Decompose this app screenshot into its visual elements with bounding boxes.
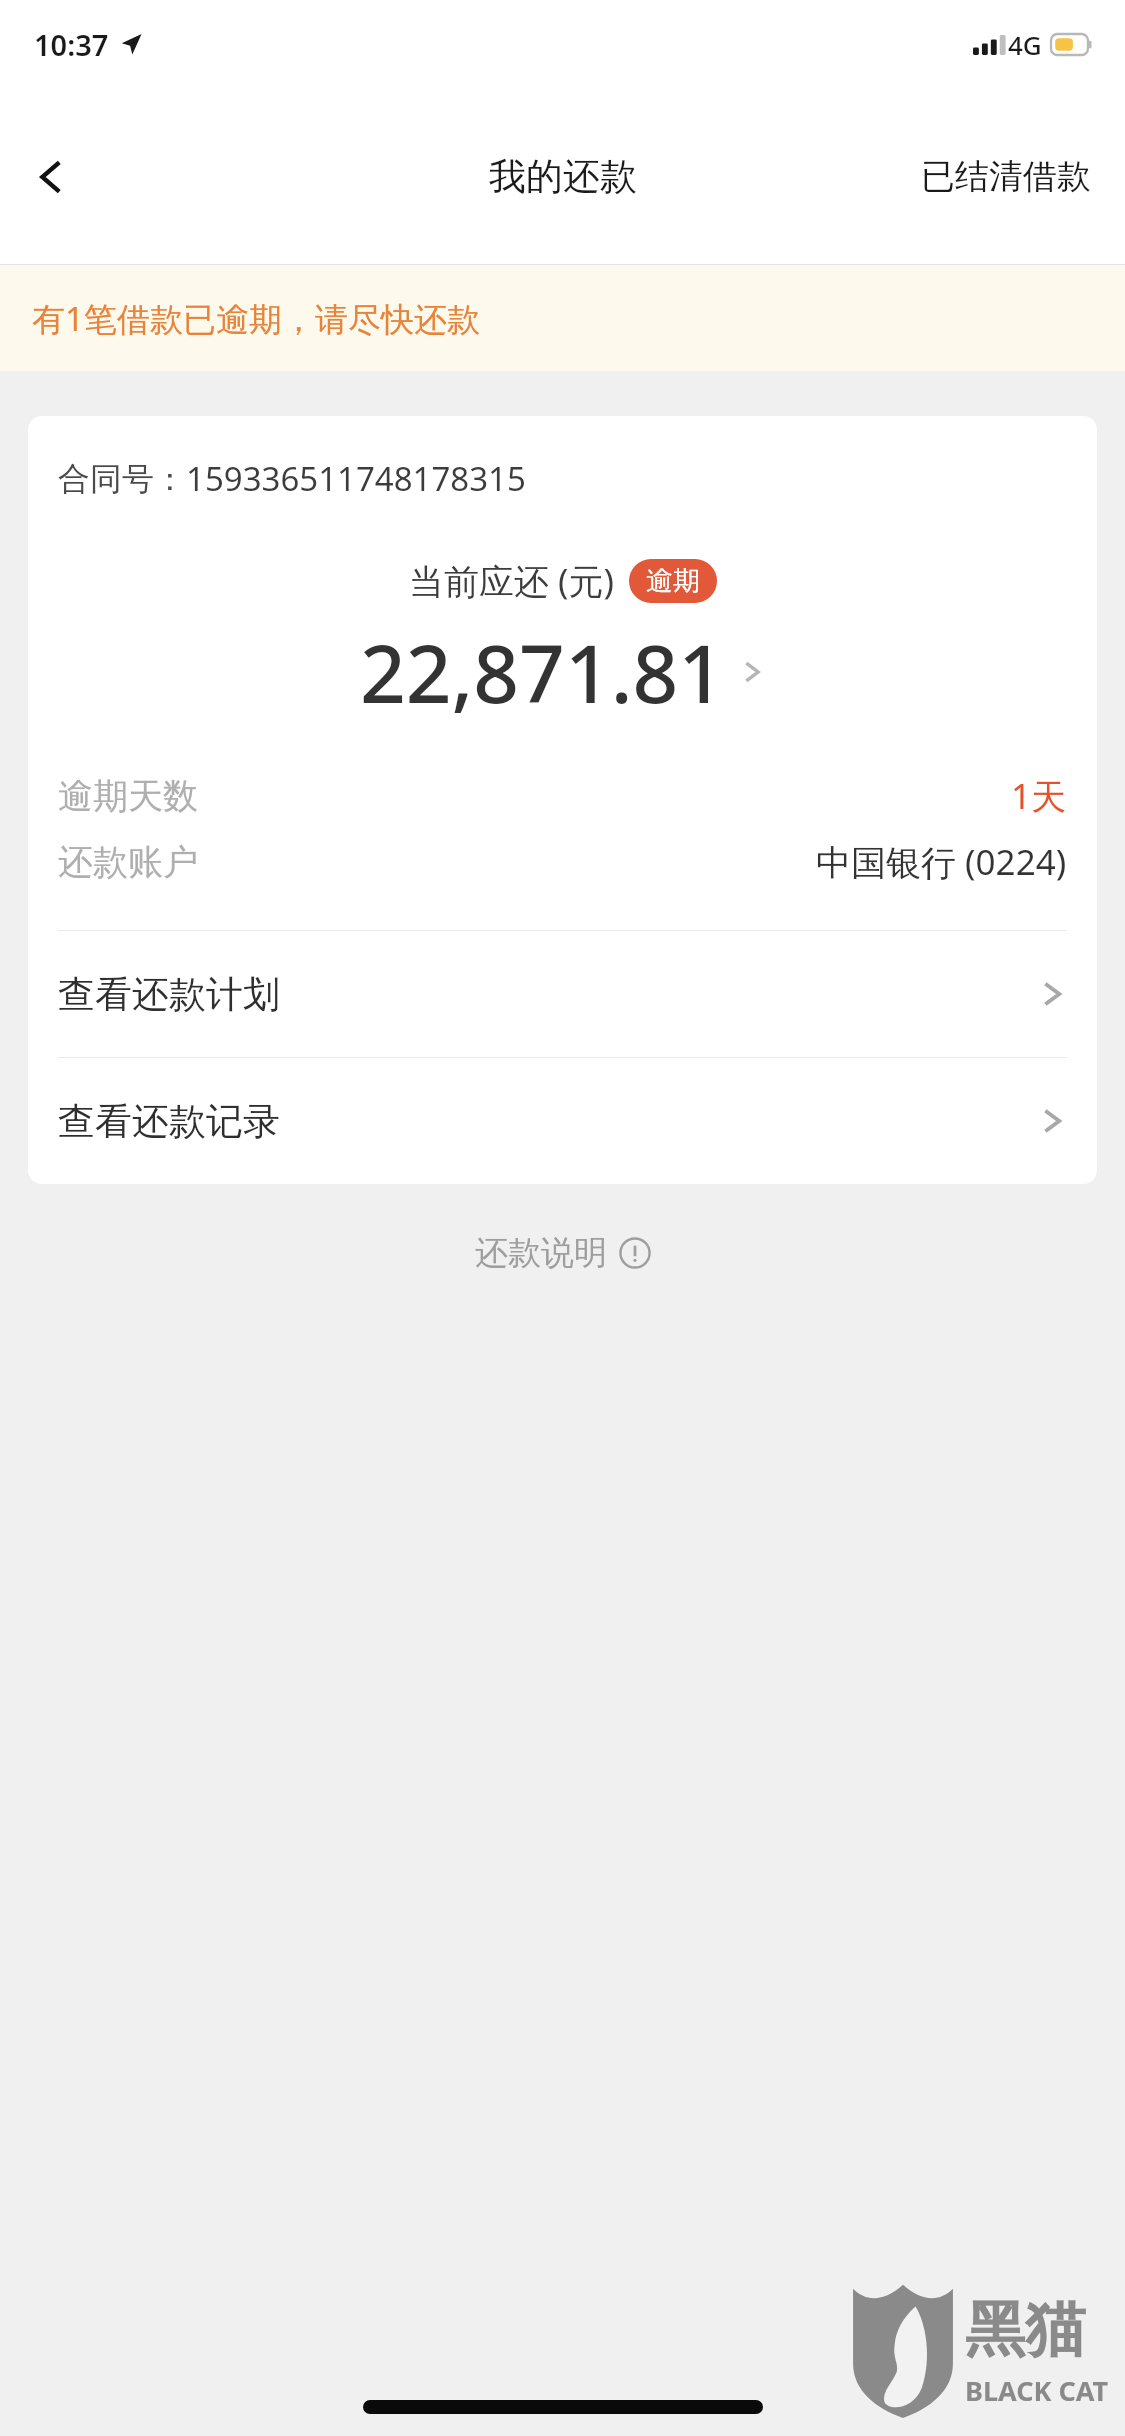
staticText: 已结清借款: [921, 155, 1091, 198]
staticText: 还款说明: [475, 1232, 607, 1274]
staticText: 查看还款计划: [58, 971, 280, 1018]
staticText: 22,871.81: [360, 617, 724, 726]
staticText: 查看还款记录: [58, 1098, 280, 1145]
staticText: 逾期: [646, 564, 700, 598]
staticText: 1天: [1011, 772, 1067, 820]
staticText: 有1笔借款已逾期，请尽快还款: [32, 296, 480, 341]
staticText: 黑猫: [965, 2292, 1085, 2368]
staticText: 逾期天数: [58, 774, 198, 818]
staticText: 合同号：: [58, 459, 186, 499]
button[interactable]: 查看还款计划: [28, 931, 1097, 1057]
staticText: 中国银行 (0224): [816, 838, 1067, 886]
staticText: 还款账户: [58, 840, 198, 884]
staticText: 4G: [1008, 27, 1042, 62]
staticText: 10:37: [34, 25, 109, 64]
staticText: 我的还款: [489, 153, 637, 200]
staticText: 159336511748178315: [186, 456, 526, 501]
button[interactable]: 还款说明: [0, 1232, 1125, 1274]
button[interactable]: 22,871.81: [28, 617, 1097, 726]
staticText: 当前应还 (元): [409, 557, 615, 605]
button[interactable]: Back: [8, 134, 94, 220]
button[interactable]: 已结清借款: [887, 88, 1125, 265]
staticText: BLACK CAT: [965, 2372, 1109, 2409]
button[interactable]: 查看还款记录: [28, 1058, 1097, 1184]
